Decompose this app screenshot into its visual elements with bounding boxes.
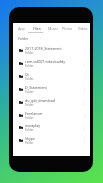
staticText: Files — [33, 26, 41, 31]
staticText: Folder — [25, 116, 34, 120]
button[interactable]: Qi — [13, 70, 90, 83]
staticText: Folder — [25, 64, 34, 68]
staticText: Video — [78, 26, 88, 31]
button[interactable]: Video — [75, 23, 90, 33]
staticText: Folder — [18, 36, 29, 41]
staticText: Folder — [25, 128, 34, 132]
staticText: Music — [48, 26, 58, 31]
staticText: D_Statement — [25, 85, 47, 90]
staticText: com.vid007.videobuddy — [25, 59, 66, 64]
button[interactable]: novaplay — [13, 121, 90, 134]
staticText: du_gdt_download — [25, 98, 56, 103]
button[interactable]: D_Statement — [13, 83, 90, 96]
staticText: App — [18, 26, 25, 31]
staticText: Folder — [25, 51, 34, 55]
staticText: Photo — [62, 26, 73, 31]
staticText: Folder — [25, 90, 34, 94]
button[interactable]: App — [13, 23, 29, 33]
staticText: novaplay — [25, 123, 41, 128]
staticText: Folder — [25, 141, 34, 145]
button[interactable]: Photo — [60, 23, 75, 33]
staticText: Freelancer — [25, 111, 43, 116]
button[interactable]: Files — [29, 23, 45, 33]
button[interactable]: 2017-2018_Statement — [13, 44, 90, 57]
button[interactable]: com.vid007.videobuddy — [13, 57, 90, 70]
button[interactable]: Skype — [13, 134, 90, 147]
staticText: Qi — [25, 72, 29, 77]
staticText: 2017-2018_Statement — [25, 46, 62, 51]
staticText: Skype — [25, 136, 35, 141]
staticText: Folder — [25, 103, 34, 107]
button[interactable]: Music — [45, 23, 60, 33]
staticText: Folder — [25, 77, 34, 81]
button[interactable]: du_gdt_download — [13, 96, 90, 109]
button[interactable]: Freelancer — [13, 109, 90, 122]
